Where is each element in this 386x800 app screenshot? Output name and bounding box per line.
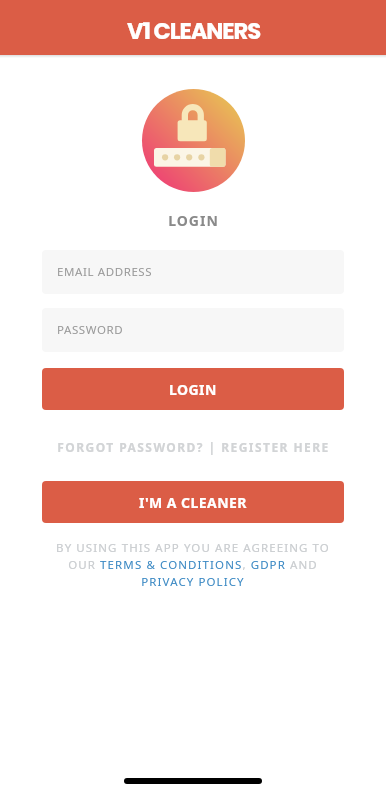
staticText: LOGIN xyxy=(169,380,217,399)
staticText: LOGIN xyxy=(168,211,219,229)
button[interactable]: EMAIL ADDRESS xyxy=(42,250,344,294)
staticText: I'M A CLEANER xyxy=(139,493,247,512)
other: App logo xyxy=(142,89,245,192)
staticText: EMAIL ADDRESS xyxy=(57,264,153,280)
button[interactable]: FORGOT PASSWORD? | REGISTER HERE xyxy=(0,438,386,455)
button[interactable]: I'M A CLEANER xyxy=(42,481,344,523)
staticText: V1 CLEANERS xyxy=(127,15,260,47)
button[interactable]: BY USING THIS APP YOU ARE AGREEING TO OU… xyxy=(52,540,334,590)
button[interactable]: PASSWORD xyxy=(42,308,344,352)
button[interactable]: LOGIN xyxy=(42,368,344,410)
staticText: PASSWORD xyxy=(57,322,124,338)
staticText: FORGOT PASSWORD? | REGISTER HERE xyxy=(57,439,330,455)
